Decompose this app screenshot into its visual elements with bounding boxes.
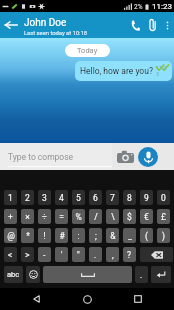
staticText: 8 bbox=[127, 193, 132, 203]
button[interactable]: Backspace bbox=[140, 247, 173, 262]
staticText: = bbox=[59, 212, 64, 222]
button[interactable]: Camera bbox=[116, 148, 134, 166]
button[interactable]: 3 bbox=[38, 190, 51, 205]
button[interactable]: 9 bbox=[140, 190, 153, 205]
staticText: ) bbox=[162, 231, 165, 241]
button[interactable]: > bbox=[21, 247, 34, 262]
staticText: £ bbox=[161, 212, 166, 222]
button[interactable]: * bbox=[21, 228, 34, 243]
button[interactable]: 2 bbox=[21, 190, 34, 205]
staticText: 0 bbox=[161, 193, 166, 203]
staticText: ' bbox=[61, 250, 63, 260]
staticText: Hello, how are you? bbox=[80, 66, 153, 76]
button[interactable]: . bbox=[89, 247, 102, 262]
button[interactable]: Enter bbox=[151, 266, 171, 283]
button[interactable]: Attach bbox=[144, 12, 160, 38]
button[interactable]: 5 bbox=[72, 190, 85, 205]
button[interactable]: + bbox=[4, 209, 17, 224]
staticText: Type to compose bbox=[8, 152, 74, 162]
staticText: @ bbox=[7, 231, 15, 241]
staticText: % bbox=[75, 212, 82, 222]
button[interactable]: ÷ bbox=[38, 209, 51, 224]
staticText: 2 bbox=[25, 193, 30, 203]
button[interactable]: " bbox=[72, 247, 85, 262]
staticText: / bbox=[94, 212, 98, 222]
button[interactable]: Home bbox=[72, 288, 102, 310]
button[interactable]: ! bbox=[38, 228, 51, 243]
staticText: 9 bbox=[144, 193, 149, 203]
button[interactable]: ? bbox=[123, 247, 136, 262]
button[interactable]: Recents bbox=[123, 288, 153, 310]
staticText: 4 bbox=[59, 193, 64, 203]
button[interactable]: ( bbox=[140, 228, 153, 243]
staticText: ! bbox=[43, 231, 46, 241]
button[interactable]: Back bbox=[21, 288, 51, 310]
staticText: , bbox=[112, 250, 114, 260]
button[interactable]: = bbox=[55, 209, 68, 224]
button[interactable]: . bbox=[135, 266, 148, 283]
staticText: & bbox=[110, 231, 116, 241]
staticText: Last seen today at 10:18 bbox=[24, 30, 88, 37]
staticText: 5 bbox=[76, 193, 81, 203]
staticText: ÷ bbox=[42, 212, 47, 222]
staticText: 1 bbox=[8, 193, 13, 203]
button[interactable]: Voice message bbox=[138, 147, 158, 167]
button[interactable]: Emoji bbox=[26, 266, 40, 283]
staticText: . bbox=[140, 270, 143, 280]
button[interactable]: / bbox=[89, 209, 102, 224]
staticText: 2% bbox=[134, 3, 143, 11]
staticText: 11:23 bbox=[152, 2, 172, 11]
staticText: 7 bbox=[110, 193, 115, 203]
button[interactable]: \ bbox=[106, 209, 119, 224]
staticText: Today bbox=[77, 46, 98, 55]
button[interactable]: : bbox=[72, 228, 85, 243]
button[interactable]: _ bbox=[123, 228, 136, 243]
staticText: × bbox=[25, 212, 30, 222]
staticText: € bbox=[144, 212, 149, 222]
staticText: . bbox=[94, 250, 97, 260]
button[interactable]: ) bbox=[157, 228, 170, 243]
button[interactable]: Space bbox=[43, 266, 132, 283]
button[interactable]: Back bbox=[0, 12, 24, 38]
staticText: + bbox=[8, 212, 13, 222]
button[interactable]: Type to compose bbox=[0, 143, 112, 170]
button[interactable]: ' bbox=[55, 247, 68, 262]
staticText: abc bbox=[7, 270, 20, 279]
button[interactable]: Today bbox=[65, 44, 110, 57]
staticText: 11:23 bbox=[156, 65, 169, 77]
button[interactable]: £ bbox=[157, 209, 170, 224]
button[interactable]: 8 bbox=[123, 190, 136, 205]
staticText: ? bbox=[127, 250, 132, 260]
button[interactable]: - bbox=[38, 247, 51, 262]
staticText: - bbox=[43, 250, 46, 260]
staticText: _ bbox=[128, 231, 132, 241]
button[interactable]: < bbox=[4, 247, 17, 262]
button[interactable]: & bbox=[106, 228, 119, 243]
button[interactable]: € bbox=[140, 209, 153, 224]
staticText: ; bbox=[95, 231, 97, 241]
button[interactable]: , bbox=[106, 247, 119, 262]
button[interactable]: Hello, how are you? bbox=[75, 61, 172, 81]
button[interactable]: abc bbox=[4, 266, 23, 283]
button[interactable]: More options bbox=[160, 12, 174, 38]
button[interactable]: 4 bbox=[55, 190, 68, 205]
staticText: 6 bbox=[93, 193, 98, 203]
button[interactable]: # bbox=[55, 228, 68, 243]
button[interactable]: 6 bbox=[89, 190, 102, 205]
button[interactable]: ; bbox=[89, 228, 102, 243]
staticText: " bbox=[77, 250, 80, 260]
button[interactable]: 1 bbox=[4, 190, 17, 205]
staticText: > bbox=[25, 250, 30, 260]
staticText: John Doe bbox=[24, 17, 67, 29]
staticText: < bbox=[8, 250, 13, 260]
button[interactable]: $ bbox=[123, 209, 136, 224]
button[interactable]: @ bbox=[4, 228, 17, 243]
button[interactable]: Call bbox=[125, 12, 144, 38]
button[interactable]: 0 bbox=[157, 190, 170, 205]
button[interactable]: × bbox=[21, 209, 34, 224]
button[interactable]: % bbox=[72, 209, 85, 224]
staticText: $ bbox=[127, 212, 132, 222]
button[interactable]: 7 bbox=[106, 190, 119, 205]
staticText: * bbox=[26, 231, 30, 241]
staticText: ( bbox=[145, 231, 148, 241]
